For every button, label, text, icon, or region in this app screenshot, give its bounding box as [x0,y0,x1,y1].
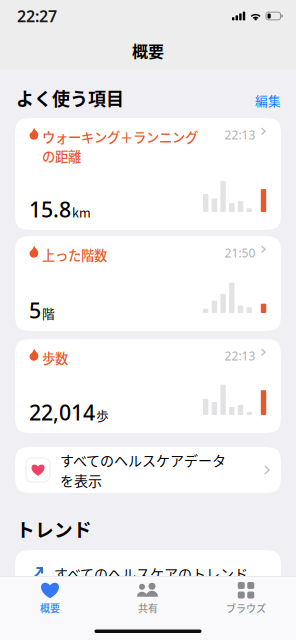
staticText: 歩 [96,406,109,424]
staticText: よく使う項目 [16,85,124,111]
staticText: 22,014 [29,398,95,426]
staticText: トレンド [16,515,92,542]
button[interactable]: ウォーキング＋ランニングの距離 [15,118,281,230]
button[interactable]: 上った階数 [15,236,281,331]
button[interactable]: 歩数 [15,339,281,433]
staticText: km [72,203,91,221]
staticText: 概要 [40,601,60,615]
staticText: 22:27 [17,5,57,27]
staticText: すべてのヘルスケアデータ を表示 [60,450,226,490]
button[interactable]: ブラウズ [197,576,295,620]
button[interactable]: 概要 [1,576,99,620]
button[interactable]: 編集 [255,91,281,109]
button[interactable]: 共有 [99,576,197,620]
staticText: ウォーキング＋ランニングの距離 [42,127,198,166]
staticText: 歩数 [42,348,68,367]
staticText: 編集 [255,91,281,109]
staticText: 5 [29,296,41,324]
staticText: すべてのヘルスケアのトレンド [54,563,248,583]
staticText: 22:13 [225,348,256,364]
button[interactable]: すべてのヘルスケアのトレンド [15,550,281,596]
staticText: 15.8 [29,195,71,223]
button[interactable]: すべてのヘルスケアデータ を表示 [15,447,281,493]
staticText: 21:50 [225,245,256,261]
staticText: 階 [42,304,55,322]
staticText: 上った階数 [42,245,107,264]
staticText: 概要 [132,39,164,62]
staticText: ブラウズ [226,601,266,615]
staticText: 共有 [138,601,158,615]
staticText: 22:13 [225,127,256,143]
